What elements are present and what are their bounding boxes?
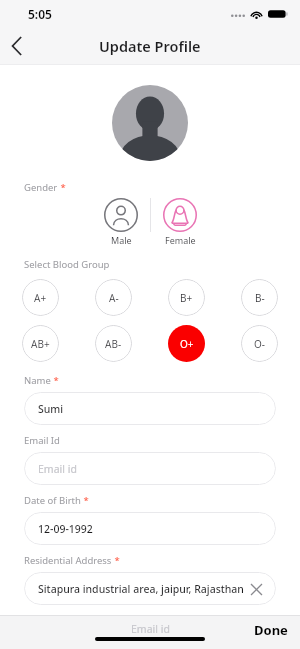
staticText: O-: [254, 337, 266, 351]
button[interactable]: O+: [168, 325, 205, 362]
staticText: Residential Address: [24, 554, 112, 567]
staticText: Email id: [38, 462, 77, 476]
staticText: *: [81, 494, 89, 507]
button[interactable]: 12-09-1992: [24, 512, 276, 545]
button[interactable]: Clear: [246, 579, 266, 599]
button[interactable]: Sumi: [24, 392, 276, 425]
button[interactable]: Done: [254, 624, 288, 642]
staticText: AB+: [31, 337, 50, 351]
staticText: Female: [165, 234, 196, 246]
staticText: Name: [24, 374, 51, 387]
staticText: A-: [109, 291, 119, 305]
button[interactable]: Back: [0, 29, 34, 63]
button[interactable]: Sitapura industrial area, jaipur, Rajast…: [24, 572, 276, 605]
staticText: B+: [180, 291, 193, 305]
staticText: 12-09-1992: [38, 522, 93, 536]
button[interactable]: O-: [241, 325, 278, 362]
staticText: *: [112, 554, 120, 567]
staticText: 5:05: [28, 6, 52, 22]
staticText: Sitapura industrial area, jaipur, Rajast…: [38, 582, 244, 596]
button[interactable]: Female: [159, 198, 201, 246]
staticText: *: [58, 181, 66, 194]
staticText: *: [51, 374, 59, 387]
staticText: Sumi: [38, 402, 64, 416]
staticText: Done: [254, 621, 288, 639]
staticText: O+: [180, 337, 194, 351]
button[interactable]: A-: [95, 279, 132, 316]
button[interactable]: Email id: [24, 452, 276, 485]
button[interactable]: AB+: [22, 325, 59, 362]
button[interactable]: AB-: [95, 325, 132, 362]
staticText: A+: [34, 291, 47, 305]
staticText: B-: [255, 291, 265, 305]
staticText: AB-: [105, 337, 122, 351]
button[interactable]: B+: [168, 279, 205, 316]
button[interactable]: B-: [241, 279, 278, 316]
staticText: Male: [111, 234, 132, 246]
staticText: Email id: [131, 622, 170, 636]
staticText: Select Blood Group: [24, 258, 110, 271]
button[interactable]: A+: [22, 279, 59, 316]
staticText: Email Id: [24, 434, 60, 447]
staticText: Gender: [24, 181, 58, 194]
button[interactable]: Male: [100, 198, 142, 246]
staticText: Date of Birth: [24, 494, 81, 507]
staticText: Update Profile: [99, 36, 201, 56]
